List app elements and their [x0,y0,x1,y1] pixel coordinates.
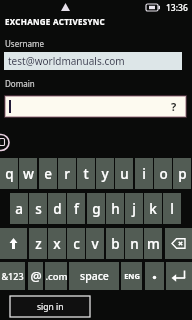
button[interactable]: t [77,158,95,189]
staticText: sign in [37,301,64,313]
button[interactable]: k [144,193,162,224]
button[interactable]: m [144,228,162,259]
button[interactable]: sign in [10,296,90,317]
button[interactable]: r [58,158,76,189]
staticText: n [130,235,139,253]
button[interactable]: z [29,228,47,259]
staticText: d [53,200,62,218]
staticText: Domain [5,78,35,89]
button[interactable]: w [19,158,37,189]
button[interactable]: a [10,193,28,224]
staticText: @ [30,268,42,285]
button[interactable]: .com [45,262,67,290]
button[interactable]: v [86,228,104,259]
staticText: b [111,235,120,253]
staticText: s [35,200,42,218]
staticText: g [92,200,101,218]
button[interactable]: l [163,193,181,224]
staticText: c [73,235,80,253]
staticText: 13:36 [166,2,188,14]
staticText: a [15,200,23,218]
button[interactable]: n [125,228,143,259]
button[interactable]: c [67,228,85,259]
button[interactable]: p [173,158,191,189]
button[interactable]: g [87,193,105,224]
button[interactable]: y [96,158,114,189]
staticText: o [159,165,168,183]
staticText: v [91,235,99,253]
staticText: r [64,165,70,183]
button[interactable]: test@worldmanuals.com [4,52,182,70]
button[interactable]: s [29,193,47,224]
staticText: e [44,165,52,183]
staticText: u [120,165,129,183]
staticText: ? [171,99,177,114]
staticText: m [147,235,160,253]
button[interactable]: ? [5,96,186,117]
button[interactable] [145,262,164,290]
button[interactable]: u [115,158,133,189]
button[interactable]: &123 [0,262,25,290]
staticText: w [23,165,34,183]
button[interactable] [165,228,192,259]
button[interactable]: e [39,158,57,189]
staticText: space [80,269,109,283]
staticText: x [53,235,61,253]
button[interactable]: o [154,158,172,189]
staticText: i [142,165,146,183]
staticText: k [149,200,157,218]
staticText: y [101,165,109,183]
staticText: l [170,200,174,218]
staticText: j [132,200,136,218]
staticText: t [83,165,89,183]
button[interactable]: d [48,193,66,224]
button[interactable] [0,228,27,259]
staticText: &123 [1,270,24,282]
button[interactable]: q [0,158,18,189]
button[interactable]: ENG [121,262,142,290]
staticText: EXCHANGE ACTIVESYNC [5,16,106,27]
button[interactable]: b [106,228,124,259]
staticText: .com [45,270,67,283]
button[interactable]: j [125,193,143,224]
staticText: z [35,235,42,253]
staticText: q [5,165,14,183]
staticText: h [111,200,120,218]
button[interactable]: x [48,228,66,259]
staticText: p [178,165,187,183]
button[interactable]: space [69,262,119,290]
staticText: test@worldmanuals.com [8,54,125,68]
button[interactable]: @ [28,262,43,290]
button[interactable]: h [106,193,124,224]
staticText: Username [5,38,44,49]
staticText: ENG [124,271,140,281]
staticText: f [74,200,79,218]
button[interactable]: f [67,193,85,224]
button[interactable] [166,262,192,290]
button[interactable]: i [135,158,153,189]
